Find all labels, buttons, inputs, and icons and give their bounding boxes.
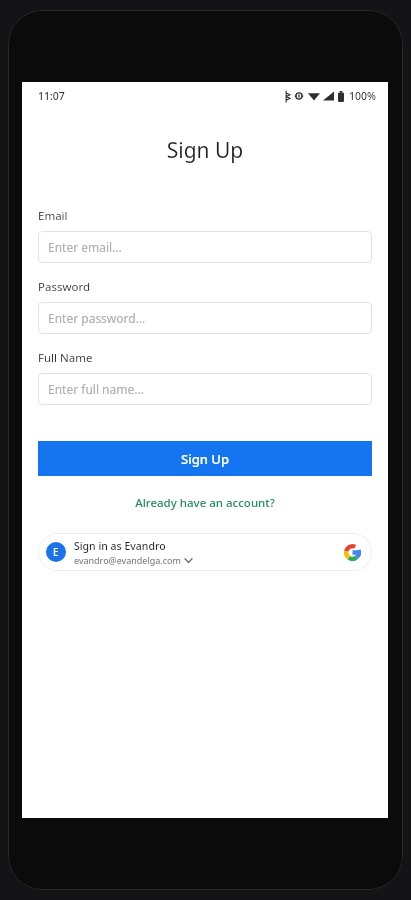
button[interactable]: Enter email... [38,231,372,263]
staticText: Email [38,208,68,224]
button[interactable]: Enter password... [38,302,372,334]
staticText: Already have an account? [135,495,275,511]
button[interactable]: Enter full name... [38,373,372,405]
staticText: evandro@evandelga.com [74,554,181,566]
staticText: E [53,545,59,559]
button[interactable]: Sign Up [38,441,372,476]
staticText: Sign Up [22,136,388,165]
other: Google [344,544,361,561]
staticText: 11:07 [38,89,65,103]
staticText: Enter email... [48,239,122,255]
staticText: 100% [349,89,376,103]
staticText: Sign Up [181,450,229,468]
staticText: Enter full name... [48,381,144,397]
button[interactable]: E [38,533,372,571]
staticText: Enter password... [48,310,146,326]
staticText: Password [38,279,91,295]
staticText: Sign in as Evandro [74,539,166,553]
staticText: Full Name [38,350,93,366]
button[interactable]: Already have an account? [22,490,388,516]
